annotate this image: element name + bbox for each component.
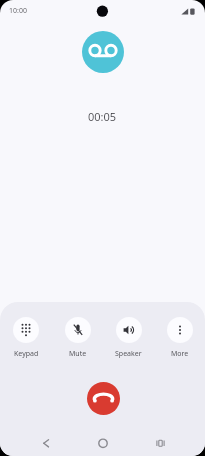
button[interactable] bbox=[36, 430, 56, 456]
staticText: Keypad bbox=[14, 349, 39, 359]
button[interactable] bbox=[82, 31, 124, 73]
staticText: Speaker bbox=[115, 349, 142, 359]
staticText: Mute bbox=[69, 349, 87, 359]
button[interactable]: Speaker bbox=[103, 317, 154, 359]
button[interactable] bbox=[93, 430, 113, 456]
button[interactable]: More bbox=[154, 317, 205, 359]
button[interactable]: Mute bbox=[52, 317, 103, 359]
button[interactable] bbox=[87, 382, 120, 415]
button[interactable]: Keypad bbox=[0, 317, 52, 359]
button[interactable] bbox=[150, 430, 170, 456]
staticText: More bbox=[171, 349, 189, 359]
staticText: 00:05 bbox=[88, 109, 117, 124]
staticText: 10:00 bbox=[9, 6, 27, 16]
